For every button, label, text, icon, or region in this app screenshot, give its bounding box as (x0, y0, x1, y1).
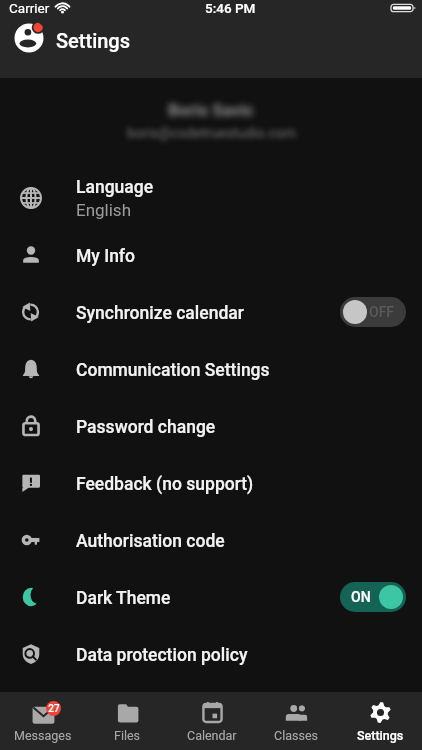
staticText: Data protection policy (76, 645, 248, 666)
staticText: Communication Settings (76, 360, 270, 381)
button[interactable]: Calendar (170, 692, 254, 750)
staticText: Authorisation code (76, 531, 225, 552)
button[interactable]: Switch on (340, 582, 406, 612)
staticText: 27 (48, 703, 60, 715)
button[interactable]: Classes (254, 692, 338, 750)
button[interactable]: Password change (0, 399, 422, 456)
staticText: My Info (76, 246, 136, 267)
button[interactable]: Authorisation code (0, 513, 422, 570)
staticText: Carrier (9, 0, 50, 16)
staticText: ON (351, 589, 371, 605)
button[interactable]: 27 (0, 692, 85, 750)
staticText: Feedback (no support) (76, 474, 254, 495)
button[interactable]: Data protection policy (0, 627, 422, 684)
button[interactable]: Dark Theme (0, 570, 422, 627)
staticText: Settings (56, 29, 131, 52)
staticText: Classes (274, 728, 318, 743)
staticText: Password change (76, 417, 216, 438)
staticText: OFF (369, 304, 395, 320)
button[interactable]: Files (85, 692, 170, 750)
button[interactable]: Feedback (no support) (0, 456, 422, 513)
staticText: Dark Theme (76, 588, 171, 609)
button[interactable]: Settings (338, 692, 422, 750)
button[interactable]: Profile (11, 20, 47, 56)
staticText: English (76, 200, 132, 220)
button[interactable]: Language (0, 171, 422, 228)
staticText: 5:46 PM (205, 0, 256, 16)
staticText: Messages (14, 728, 72, 743)
button[interactable]: Synchronize calendar (0, 285, 422, 342)
staticText: Synchronize calendar (76, 303, 244, 324)
staticText: Files (114, 728, 141, 743)
staticText: Boris Savic (168, 100, 254, 120)
button[interactable]: Switch off (340, 297, 406, 327)
staticText: boris@codetruestudio.com (127, 125, 296, 141)
staticText: Calendar (187, 728, 237, 743)
button[interactable]: My Info (0, 228, 422, 285)
staticText: Settings (357, 728, 404, 743)
button[interactable]: Communication Settings (0, 342, 422, 399)
staticText: Language (76, 177, 154, 198)
